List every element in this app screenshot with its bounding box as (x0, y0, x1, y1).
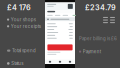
staticText: £234.79 (85, 3, 116, 12)
staticText: Your receipts (11, 24, 41, 29)
button[interactable]: Your shops (7, 17, 36, 22)
staticText: Status (11, 61, 23, 66)
button[interactable]: Your receipts (7, 24, 41, 29)
staticText: £4 176 (7, 3, 31, 12)
staticText: Total spend (12, 48, 36, 53)
staticText: Payment (83, 49, 101, 54)
button[interactable]: Tab (55, 59, 65, 64)
staticText: Your shops (11, 17, 36, 22)
staticText: Paper billing is £6 (79, 36, 117, 41)
button[interactable]: Tab (65, 59, 75, 64)
button[interactable]: Tab (45, 59, 55, 64)
button[interactable]: Continue (45, 44, 75, 50)
